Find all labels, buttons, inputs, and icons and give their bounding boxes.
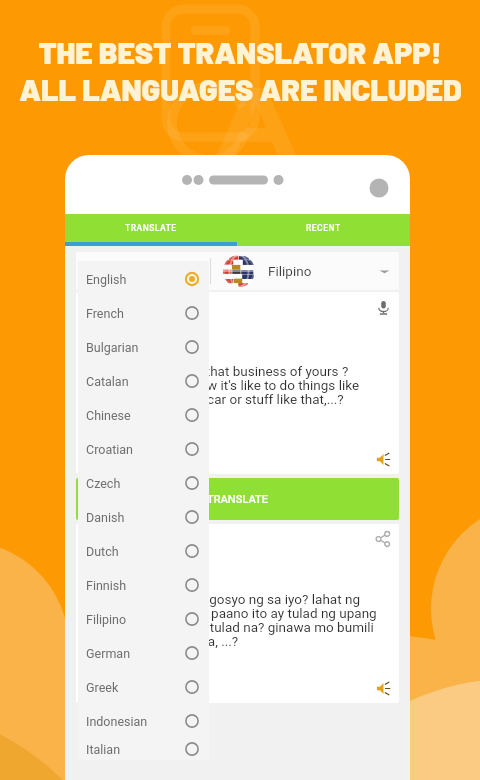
staticText: Chinese	[86, 408, 131, 423]
staticText: Catalan	[86, 374, 129, 389]
staticText: Greek	[86, 680, 119, 695]
button[interactable]: Share	[372, 528, 394, 550]
staticText: Finnish	[86, 578, 127, 593]
staticText: ALL LANGUAGES ARE INCLUDED	[19, 70, 462, 107]
button[interactable]: TRANSLATE	[65, 214, 237, 242]
button[interactable]: Listen	[373, 678, 393, 698]
staticText: Bulgarian	[86, 340, 139, 355]
button[interactable]: Filipino	[211, 252, 399, 290]
button[interactable]: English	[78, 262, 209, 296]
staticText: TRANSLATE	[207, 493, 268, 506]
staticText: Indonesian	[86, 714, 148, 729]
staticText: Italian	[86, 742, 121, 757]
button[interactable]: Filipino	[78, 602, 209, 636]
button[interactable]: Bulgarian	[78, 330, 209, 364]
staticText: Danish	[86, 510, 125, 525]
button[interactable]: Listen	[373, 449, 393, 469]
staticText: Filipino	[268, 263, 312, 279]
staticText: English	[86, 272, 127, 287]
staticText: Filipino	[86, 612, 127, 627]
button[interactable]: Czech	[78, 466, 209, 500]
staticText: Croatian	[86, 442, 134, 457]
button[interactable]: Catalan	[78, 364, 209, 398]
button[interactable]: Voice input	[372, 296, 394, 318]
staticText: Czech	[86, 476, 121, 491]
staticText: What do you do in that business of yours…	[95, 363, 360, 408]
button[interactable]: RECENT	[237, 214, 410, 242]
button[interactable]: Italian	[78, 738, 209, 760]
button[interactable]: Danish	[78, 500, 209, 534]
staticText: RECENT	[306, 223, 341, 233]
button[interactable]: Dutch	[78, 534, 209, 568]
button[interactable]: Finnish	[78, 568, 209, 602]
button[interactable]: French	[78, 296, 209, 330]
button[interactable]: TRANSLATE	[76, 478, 399, 520]
button[interactable]: Croatian	[78, 432, 209, 466]
staticText: THE BEST TRANSLATOR APP!	[38, 33, 442, 70]
button[interactable]: Greek	[78, 670, 209, 704]
staticText: French	[86, 306, 124, 321]
staticText: Dutch	[86, 544, 119, 559]
staticText: Ano ang ginawa negosyo ng sa iyo? lahat …	[95, 591, 377, 650]
button[interactable]: Chinese	[78, 398, 209, 432]
staticText: German	[86, 646, 131, 661]
button[interactable]: German	[78, 636, 209, 670]
staticText: TRANSLATE	[125, 223, 177, 233]
button[interactable]: Indonesian	[78, 704, 209, 738]
button[interactable]: English	[76, 252, 210, 290]
